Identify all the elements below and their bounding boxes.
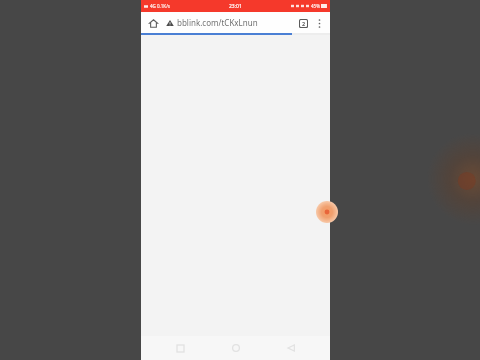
button[interactable]: Home xyxy=(145,15,161,31)
staticText: 4G xyxy=(150,3,156,9)
staticText: 45% xyxy=(311,3,320,9)
staticText: 2 xyxy=(302,20,306,27)
button[interactable]: More options xyxy=(312,16,326,30)
staticText: 0.1K/s xyxy=(157,3,170,9)
button[interactable]: Back xyxy=(282,339,300,357)
staticText: 23:01 xyxy=(229,3,242,10)
button[interactable]: Home xyxy=(227,339,245,357)
button[interactable]: Tabs, 2 open xyxy=(295,15,311,31)
button[interactable]: Recent apps xyxy=(171,339,189,357)
staticText: bblink.com/tCKxLnun xyxy=(177,17,258,28)
button[interactable]: bblink.com/tCKxLnun xyxy=(166,12,292,33)
other: Chat widget xyxy=(316,201,338,223)
